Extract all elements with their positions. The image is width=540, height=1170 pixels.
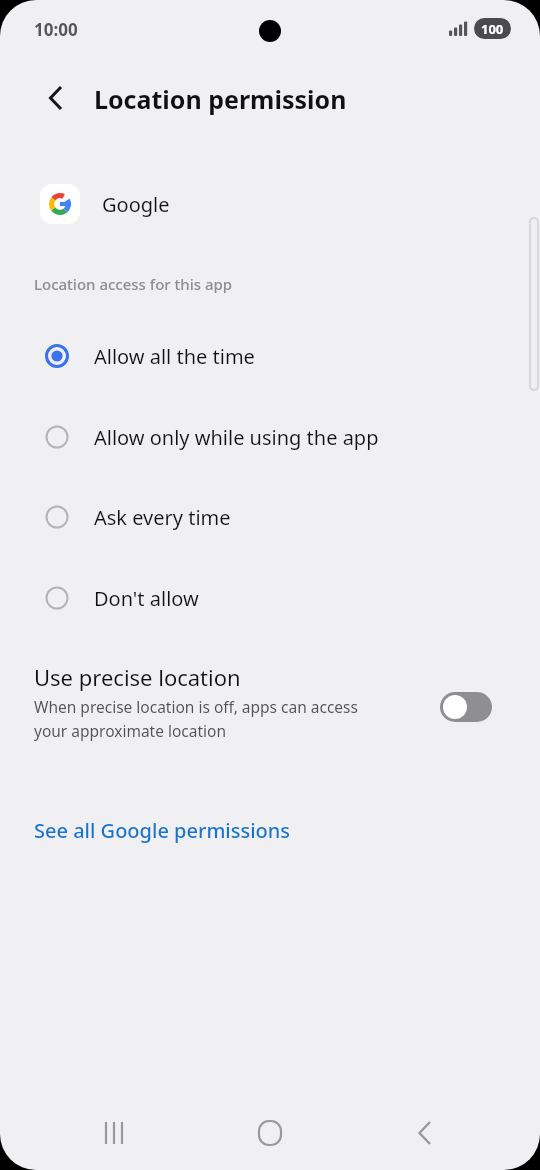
staticText: Use precise location [34,662,241,692]
button[interactable]: Use precise location toggle [440,692,492,722]
button[interactable]: Recents [90,1108,140,1158]
staticText: When precise location is off, apps can a… [34,696,358,741]
staticText: Don't allow [94,585,199,612]
button[interactable]: Allow only while using the app [0,407,540,467]
button[interactable]: Don't allow [0,568,540,628]
button[interactable]: Back [28,72,80,124]
staticText: Allow all the time [94,343,255,370]
staticText: 10:00 [34,18,78,41]
button[interactable]: Allow all the time [0,326,540,386]
button[interactable]: Ask every time [0,487,540,547]
staticText: Google [102,191,170,218]
button[interactable]: Use precise location [0,656,540,766]
staticText: Location access for this app [34,274,233,294]
button[interactable]: Google [0,176,540,232]
button[interactable]: See all Google permissions [0,806,540,854]
staticText: Allow only while using the app [94,424,379,451]
button[interactable]: Back [398,1108,448,1158]
staticText: Location permission [94,82,347,116]
staticText: Ask every time [94,504,231,531]
staticText: 100 [481,20,504,38]
button[interactable]: Home [245,1108,295,1158]
staticText: See all Google permissions [34,817,291,844]
